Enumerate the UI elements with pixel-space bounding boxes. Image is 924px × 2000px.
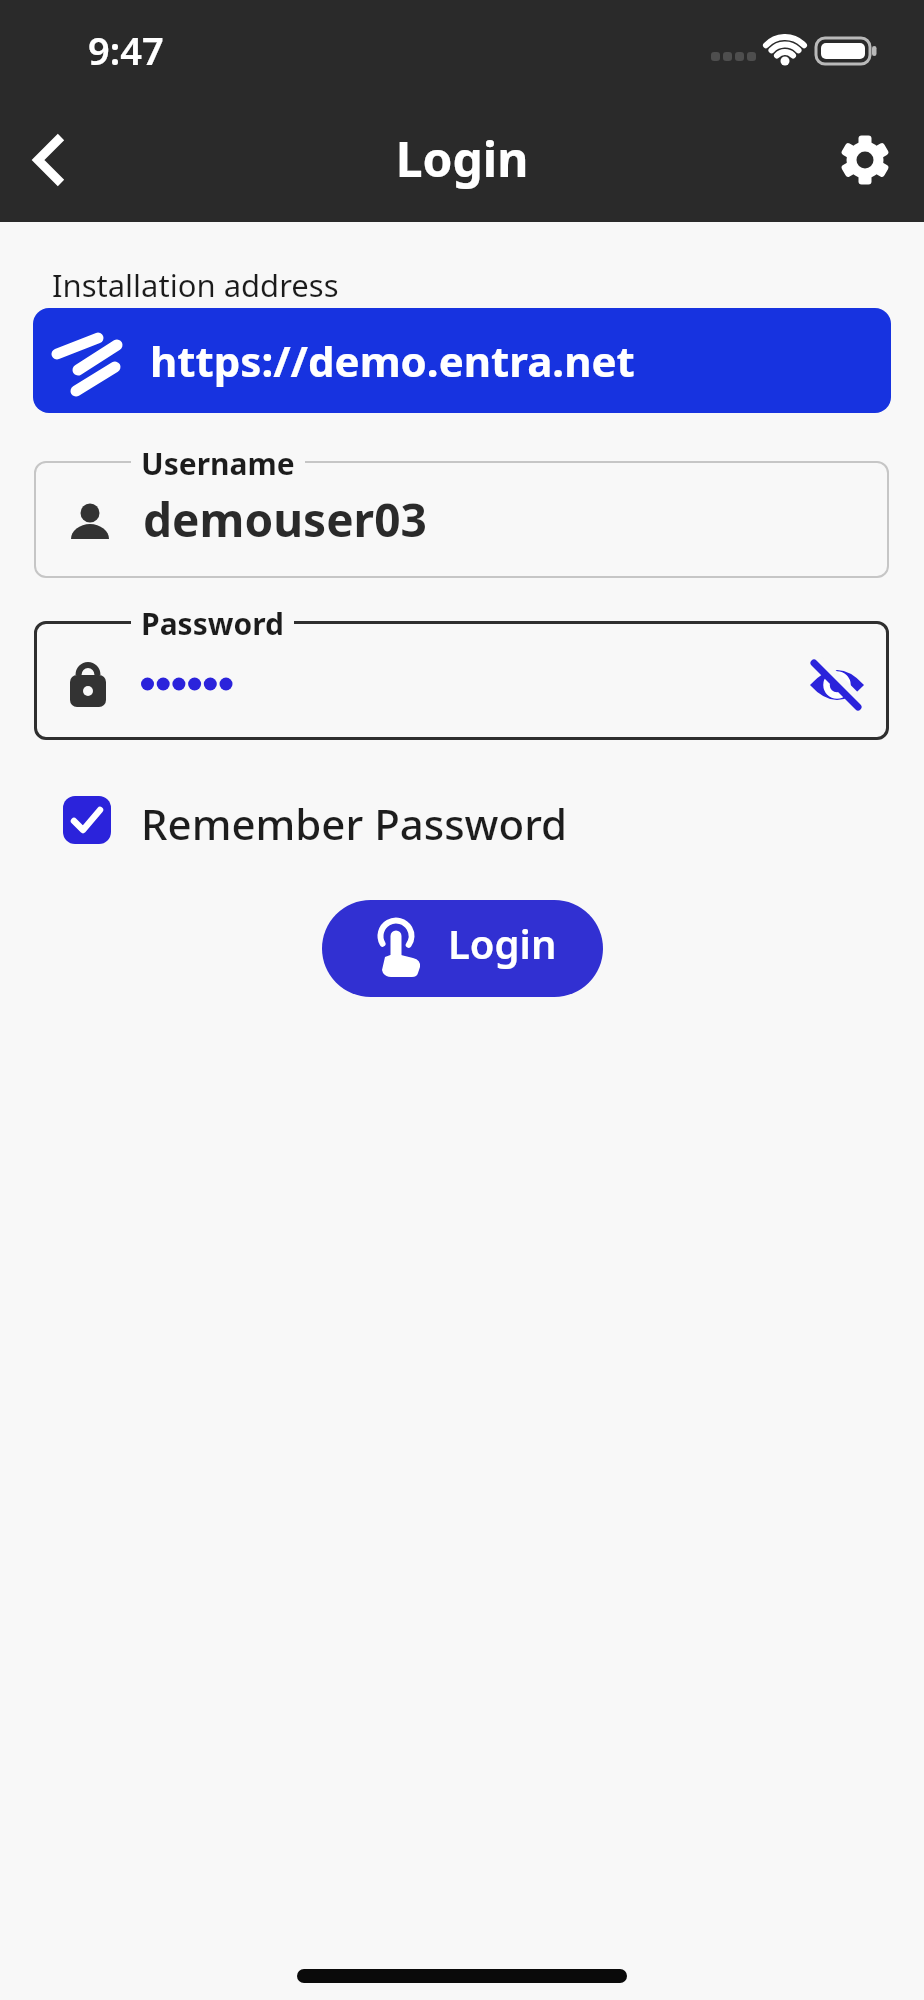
staticText: Username <box>141 443 295 484</box>
staticText: Password <box>141 603 284 644</box>
button[interactable]: Login <box>322 900 603 997</box>
staticText: Login <box>448 916 557 970</box>
staticText: Login <box>0 126 924 191</box>
button[interactable] <box>837 132 893 188</box>
staticText: demouser03 <box>143 488 427 551</box>
staticText: 9:47 <box>88 24 164 76</box>
button[interactable] <box>34 461 889 578</box>
button[interactable] <box>63 796 111 844</box>
button[interactable] <box>34 621 889 740</box>
staticText: Remember Password <box>141 795 568 852</box>
button[interactable] <box>807 654 867 714</box>
button[interactable]: https://demo.entra.net <box>33 308 891 413</box>
staticText: https://demo.entra.net <box>150 332 635 389</box>
staticText: Installation address <box>52 264 339 306</box>
button[interactable] <box>20 125 82 195</box>
